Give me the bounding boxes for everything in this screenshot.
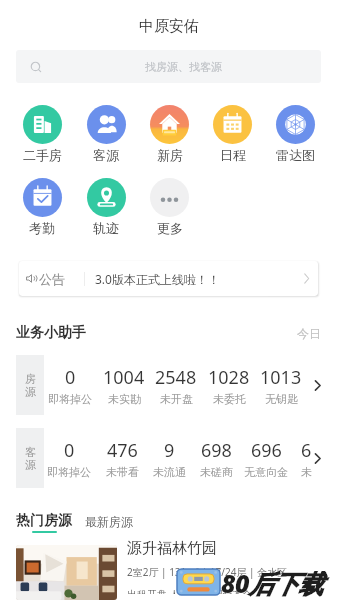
- staticText: 未: [301, 465, 312, 479]
- staticText: 未委托: [213, 392, 246, 406]
- staticText: 1004: [103, 365, 145, 390]
- staticText: 中原安佑: [139, 17, 199, 36]
- staticText: 源升福林竹园: [127, 539, 217, 558]
- staticText: 轨迹: [93, 220, 119, 236]
- staticText: 考勤: [29, 220, 55, 236]
- staticText: 即将掉公: [48, 392, 92, 406]
- staticText: 9: [164, 438, 175, 463]
- button[interactable]: 日程: [201, 105, 264, 163]
- button[interactable]: 房源: [0, 355, 337, 415]
- button[interactable]: 二手房: [10, 105, 74, 163]
- button[interactable]: 考勤: [10, 178, 74, 236]
- staticText: 1013: [260, 365, 302, 390]
- button[interactable]: 热门房源: [16, 512, 72, 533]
- button[interactable]: 客源: [0, 428, 337, 488]
- staticText: 未流通: [153, 465, 186, 479]
- staticText: 日程: [220, 147, 246, 163]
- staticText: 即将掉公: [47, 465, 91, 479]
- button[interactable]: 客源: [74, 105, 138, 163]
- staticText: 雷达图: [276, 147, 315, 163]
- staticText: 1028: [208, 365, 250, 390]
- staticText: 未带看: [106, 465, 139, 479]
- button[interactable]: 轨迹: [74, 178, 138, 236]
- button[interactable]: 新房: [138, 105, 201, 163]
- staticText: 客源: [93, 147, 119, 163]
- staticText: 2室2厅 | 131m² | 17/24层 | 金水区: [127, 565, 288, 579]
- staticText: 698: [201, 438, 232, 463]
- staticText: 公告: [39, 271, 65, 287]
- staticText: 二手房: [23, 147, 62, 163]
- staticText: 未磋商: [200, 465, 233, 479]
- staticText: 找房源、找客源: [145, 60, 222, 74]
- staticText: 业务小助手: [16, 324, 86, 342]
- staticText: 0: [64, 438, 75, 463]
- staticText: 更多: [157, 220, 183, 236]
- staticText: 未实勘: [108, 392, 141, 406]
- staticText: 房源: [25, 372, 36, 399]
- staticText: 新房: [157, 147, 183, 163]
- staticText: 今日: [297, 326, 321, 341]
- button[interactable]: 源升福林竹园: [16, 545, 321, 600]
- staticText: 客源: [25, 445, 36, 472]
- button[interactable]: 雷达图: [264, 105, 327, 163]
- staticText: 热门房源: [16, 512, 72, 530]
- staticText: 未开盘: [160, 392, 193, 406]
- button[interactable]: 最新房源: [85, 514, 133, 529]
- staticText: 6: [301, 438, 312, 463]
- button[interactable]: 更多: [138, 178, 201, 236]
- button[interactable]: 找房源、找客源: [16, 50, 321, 83]
- staticText: 出租开盘 人车分流 配套齐全: [127, 587, 253, 594]
- staticText: 696: [251, 438, 282, 463]
- staticText: 80后下载: [221, 566, 323, 600]
- button[interactable]: 公告: [19, 261, 318, 296]
- staticText: 476: [107, 438, 138, 463]
- staticText: 2548: [155, 365, 197, 390]
- staticText: 无意向金: [244, 465, 288, 479]
- staticText: 无钥匙: [265, 392, 298, 406]
- staticText: 3.0版本正式上线啦！！: [95, 271, 220, 287]
- staticText: 0: [65, 365, 76, 390]
